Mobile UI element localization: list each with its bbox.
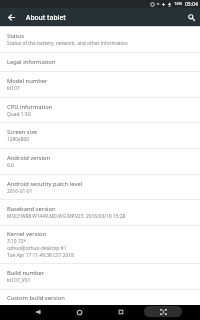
button[interactable]: Custom build version — [0, 290, 200, 305]
button[interactable]: Baseband version — [0, 200, 200, 225]
staticText: Screen size — [7, 128, 38, 136]
staticText: Android security patch level — [7, 180, 83, 188]
button[interactable]: Kernel version — [0, 226, 200, 263]
staticText: 16% — [174, 1, 183, 7]
button[interactable]: Status — [0, 27, 200, 52]
staticText: 1280x800 — [7, 136, 29, 143]
staticText: Status of the battery, network, and othe… — [7, 40, 128, 47]
staticText: 05:04 — [185, 1, 198, 8]
button[interactable]: Screen size — [0, 123, 200, 148]
staticText: 3.10.72+ — [7, 238, 27, 245]
button[interactable]: Home — [72, 305, 86, 319]
staticText: 6.0 — [7, 162, 14, 169]
staticText: kt107 — [7, 85, 20, 92]
button[interactable]: Back — [31, 305, 45, 319]
button[interactable]: Android security patch level — [0, 175, 200, 199]
staticText: Build number — [7, 269, 45, 277]
staticText: MOLY.WR8.W1449.MD.WG.MP.V23, 2016/03/18 … — [7, 213, 126, 220]
staticText: Quad 1.5G — [7, 111, 32, 118]
staticText: CPU information — [7, 103, 53, 111]
button[interactable]: Build number — [0, 264, 200, 289]
staticText: Kernel version — [7, 230, 47, 238]
staticText: About tablet — [26, 13, 66, 22]
staticText: Custom build version — [7, 294, 65, 302]
staticText: kt107_V01 — [7, 277, 31, 284]
button[interactable]: Search — [182, 8, 200, 26]
button[interactable]: Exit full screen — [144, 306, 182, 317]
button[interactable]: Model number — [0, 72, 200, 97]
button[interactable]: Recent apps — [114, 305, 128, 319]
button[interactable]: Navigate up — [2, 8, 20, 26]
staticText: Legal information — [7, 58, 56, 66]
staticText: 2016-01-01 — [7, 188, 33, 195]
button[interactable]: Android version — [0, 149, 200, 174]
staticText: Android version — [7, 154, 51, 162]
staticText: ozhuo@ozhuo-desktop #1 — [7, 245, 67, 252]
button[interactable]: Legal information — [0, 53, 200, 71]
button[interactable]: CPU information — [0, 98, 200, 122]
staticText: Model number — [7, 77, 48, 85]
staticText: Status — [7, 32, 24, 40]
staticText: Tue Apr 17 11:49:38 CST 2018 — [7, 252, 74, 259]
staticText: Baseband version — [7, 205, 56, 213]
